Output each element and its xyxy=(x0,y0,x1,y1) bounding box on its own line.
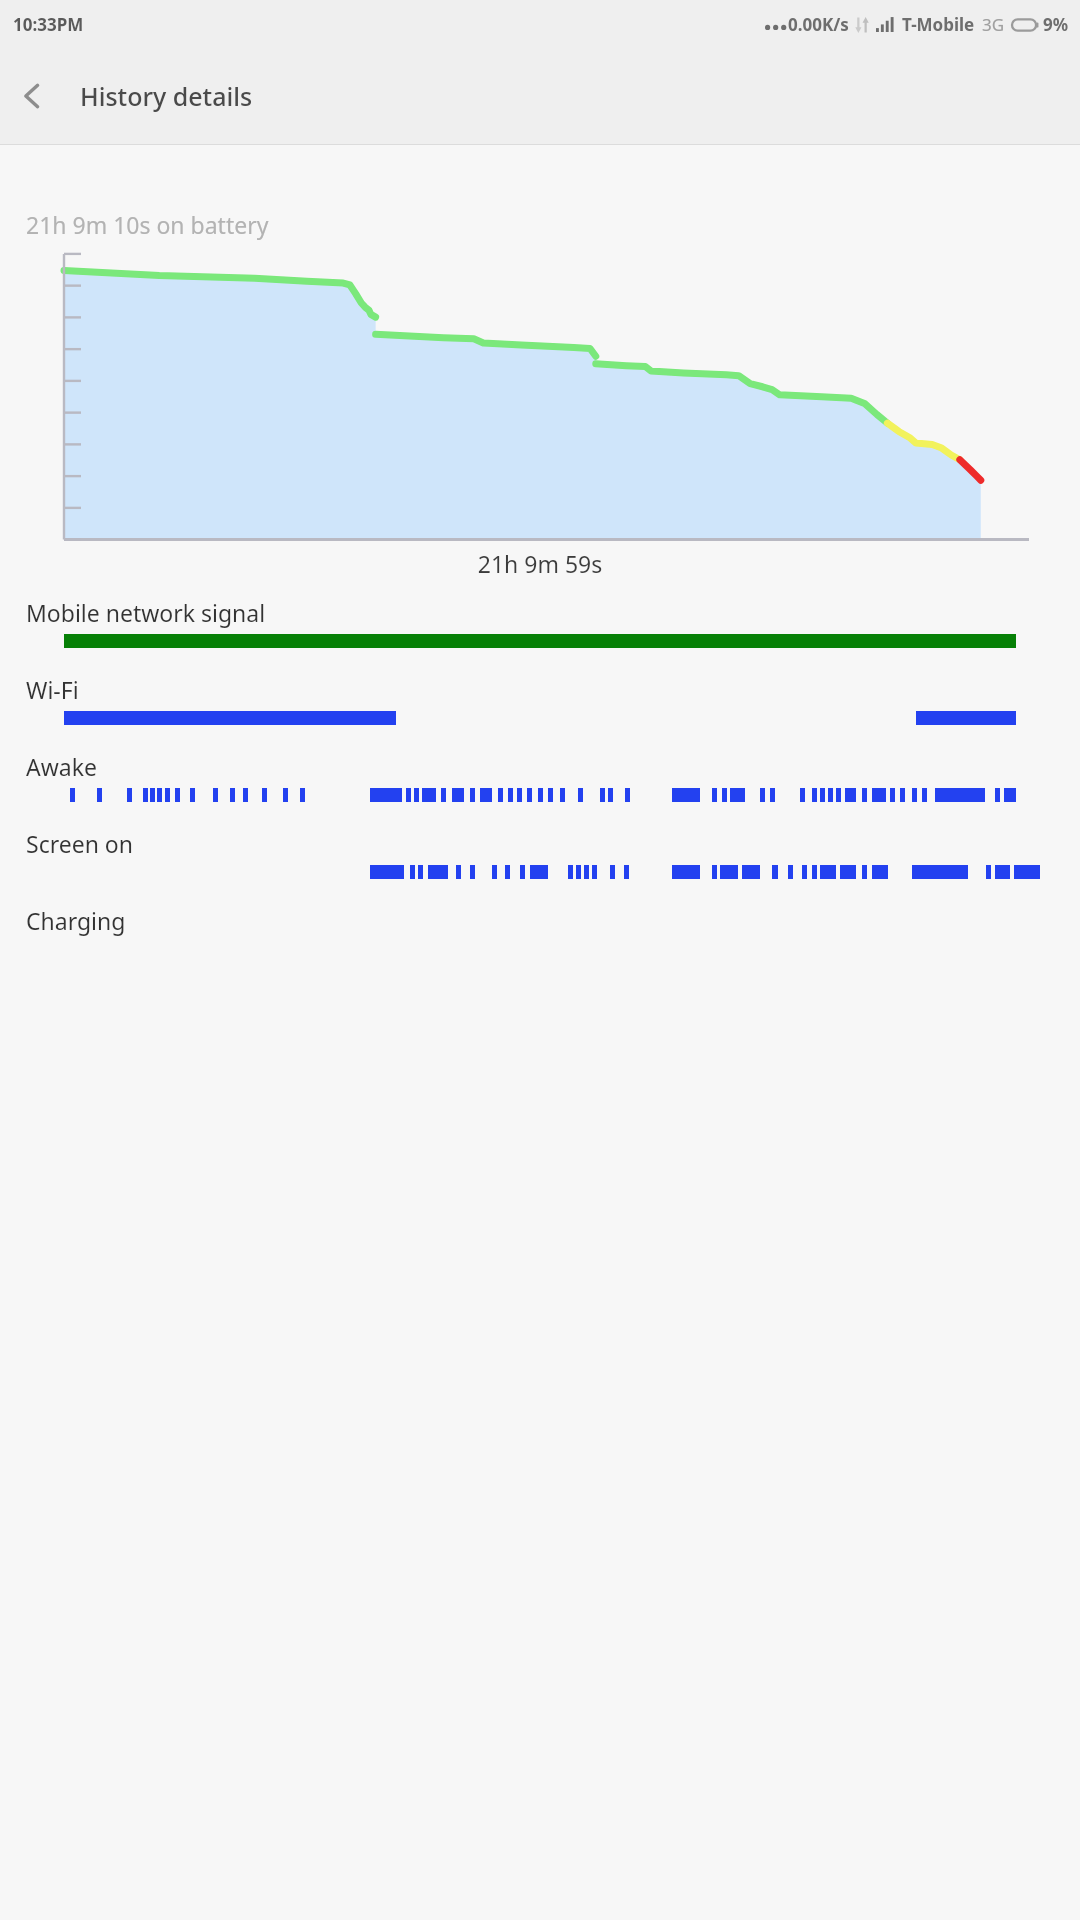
button[interactable]: Charging xyxy=(0,891,1080,968)
staticText: Mobile network signal xyxy=(26,597,266,628)
staticText: 10:33PM xyxy=(13,13,84,36)
staticText: 9% xyxy=(1043,13,1069,36)
button[interactable]: Mobile network signal xyxy=(0,583,1080,660)
staticText: History details xyxy=(80,79,253,113)
staticText: 21h 9m 59s xyxy=(0,548,1080,579)
staticText: Charging xyxy=(26,905,126,936)
button[interactable]: Awake xyxy=(0,737,1080,814)
button[interactable]: Wi-Fi xyxy=(0,660,1080,737)
button[interactable]: Back xyxy=(0,64,64,128)
button[interactable]: Screen on xyxy=(0,814,1080,891)
staticText: T-Mobile xyxy=(902,13,975,36)
staticText: Screen on xyxy=(26,828,133,859)
staticText: Wi-Fi xyxy=(26,674,79,705)
staticText: Awake xyxy=(26,751,97,782)
staticText: 3G xyxy=(982,13,1005,36)
staticText: 21h 9m 10s on battery xyxy=(26,209,269,240)
staticText: 0.00K/s xyxy=(788,13,849,36)
